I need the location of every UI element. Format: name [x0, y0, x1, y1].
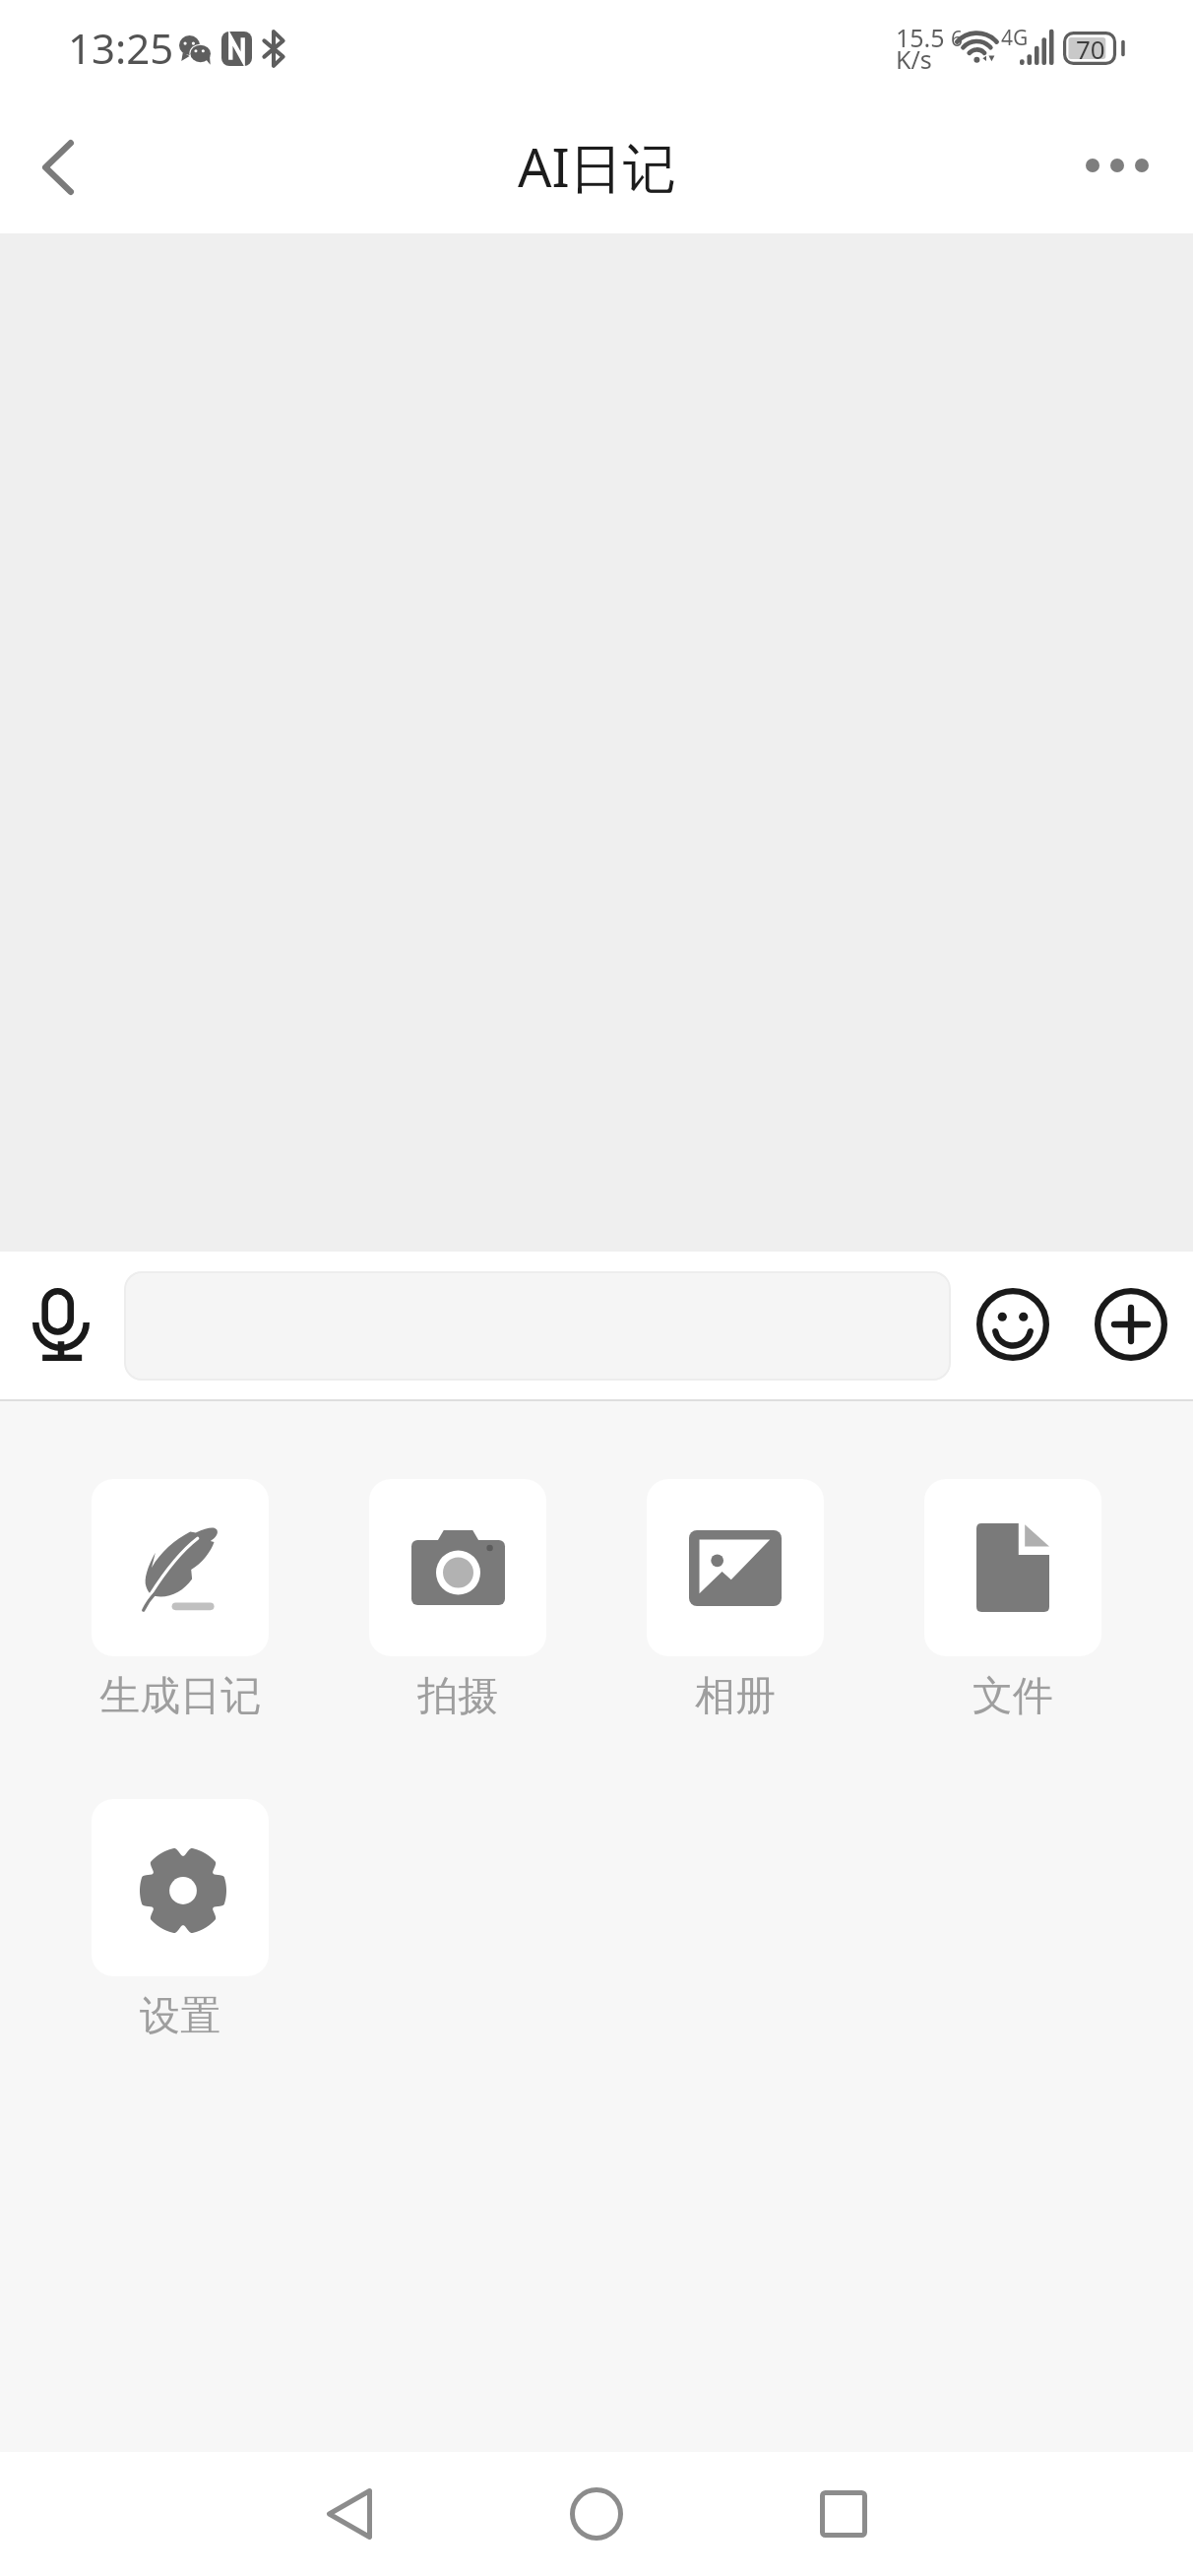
staticText: 相册	[695, 1671, 776, 1722]
button[interactable]: Recents	[789, 2460, 898, 2568]
button[interactable]: 相册	[647, 1479, 824, 1722]
staticText: AI日记	[518, 130, 676, 203]
staticText: 70	[1076, 32, 1105, 66]
staticText: K/s	[896, 42, 932, 76]
staticText: 4G	[1001, 24, 1029, 52]
staticText: 6	[951, 25, 964, 53]
staticText: 文件	[973, 1671, 1053, 1722]
staticText: 13:25	[68, 20, 174, 76]
button[interactable]: Add attachment	[1080, 1273, 1182, 1376]
staticText: 15.5	[896, 21, 945, 54]
button[interactable]: Back	[14, 118, 108, 226]
button[interactable]: Home	[542, 2460, 651, 2568]
button[interactable]: More options	[1063, 118, 1171, 226]
button[interactable]: 设置	[92, 1799, 269, 2042]
button[interactable]: Back	[295, 2460, 404, 2568]
button[interactable]: Emoji	[962, 1273, 1064, 1376]
button[interactable]: 生成日记	[92, 1479, 269, 1722]
button[interactable]: 文件	[924, 1479, 1101, 1722]
staticText: 拍摄	[417, 1671, 498, 1722]
button[interactable]: 拍摄	[369, 1479, 546, 1722]
staticText: 设置	[140, 1991, 220, 2042]
button[interactable]: Voice input	[10, 1265, 112, 1384]
staticText: 生成日记	[99, 1671, 261, 1722]
